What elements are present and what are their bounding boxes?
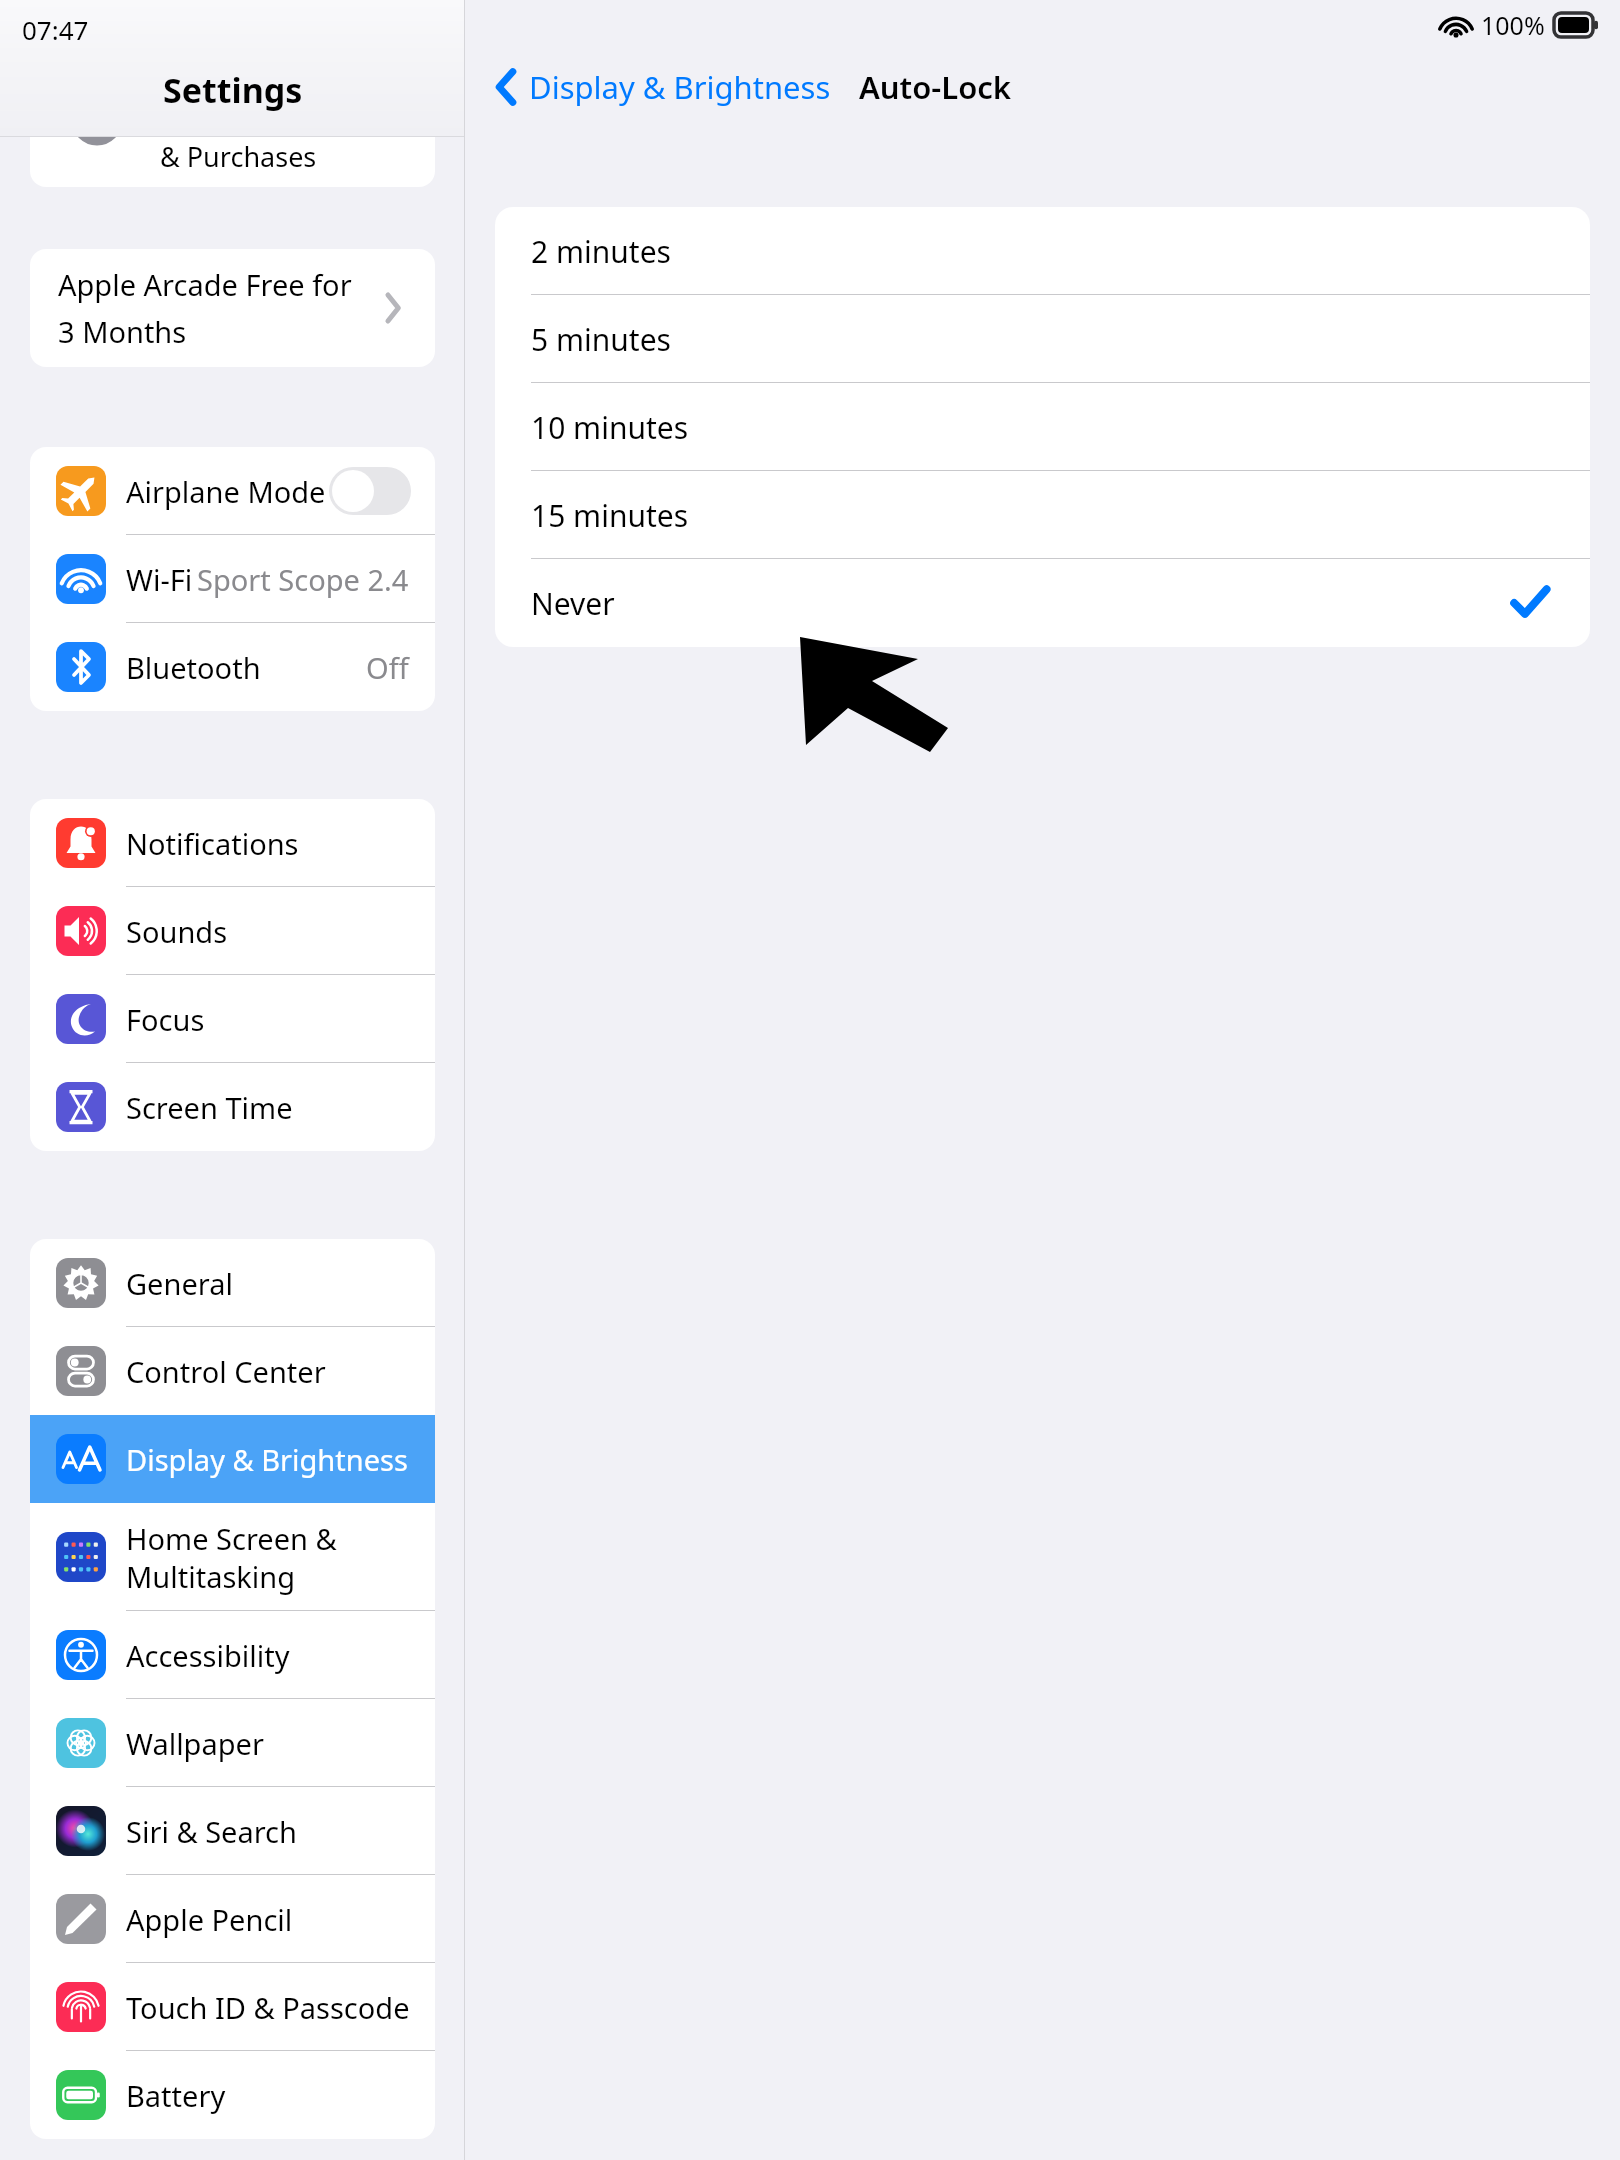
button[interactable]: Home Screen & Multitasking xyxy=(30,1503,435,1611)
staticText: Auto-Lock xyxy=(859,66,1012,108)
staticText: Control Center xyxy=(126,1352,326,1391)
staticText: Home Screen & Multitasking xyxy=(126,1519,337,1596)
staticText: Off xyxy=(366,648,409,687)
staticText: 3 Months xyxy=(58,312,187,351)
button[interactable]: Siri & Search xyxy=(30,1787,435,1875)
staticText: Focus xyxy=(126,1000,205,1039)
staticText: Bluetooth xyxy=(126,648,261,687)
button[interactable]: Control Center xyxy=(30,1327,435,1415)
button[interactable]: Apple Pencil xyxy=(30,1875,435,1963)
other: Selected xyxy=(1512,585,1548,621)
button[interactable]: Wallpaper xyxy=(30,1699,435,1787)
staticText: 07:47 xyxy=(22,12,89,47)
staticText: 15 minutes xyxy=(531,495,689,536)
staticText: Battery xyxy=(126,2076,226,2115)
staticText: Display & Brightness xyxy=(529,66,831,108)
staticText: Touch ID & Passcode xyxy=(126,1988,410,2027)
button[interactable]: Battery xyxy=(30,2051,435,2139)
staticText: Never xyxy=(531,583,615,624)
staticText: Screen Time xyxy=(126,1088,293,1127)
button[interactable]: Sounds xyxy=(30,887,435,975)
staticText: Wallpaper xyxy=(126,1724,264,1763)
staticText: Notifications xyxy=(126,824,299,863)
button[interactable]: Apple Arcade Free for xyxy=(30,249,435,367)
staticText: Siri & Search xyxy=(126,1812,297,1851)
staticText: 2 minutes xyxy=(531,231,671,272)
staticText: Sounds xyxy=(126,912,228,951)
button[interactable]: Display & Brightness xyxy=(491,58,837,116)
staticText: General xyxy=(126,1264,233,1303)
staticText: Apple Pencil xyxy=(126,1900,293,1939)
button[interactable]: Wi-Fi xyxy=(30,535,435,623)
staticText: Display & Brightness xyxy=(126,1440,408,1479)
button[interactable]: Display & Brightness xyxy=(30,1415,435,1503)
button[interactable]: Accessibility xyxy=(30,1611,435,1699)
staticText: Wi-Fi xyxy=(126,560,193,599)
button[interactable]: 5 minutes xyxy=(495,295,1590,383)
staticText: Airplane Mode xyxy=(126,472,326,511)
button[interactable]: Focus xyxy=(30,975,435,1063)
button[interactable]: Never xyxy=(495,559,1590,647)
staticText: Accessibility xyxy=(126,1636,290,1675)
button[interactable]: General xyxy=(30,1239,435,1327)
staticText: Settings xyxy=(163,67,303,113)
staticText: Sport Scope 2.4 xyxy=(197,560,409,599)
staticText: 100% xyxy=(1481,8,1545,42)
button[interactable]: Screen Time xyxy=(30,1063,435,1151)
button[interactable]: Touch ID & Passcode xyxy=(30,1963,435,2051)
button[interactable]: Notifications xyxy=(30,799,435,887)
button[interactable]: 15 minutes xyxy=(495,471,1590,559)
button[interactable]: 10 minutes xyxy=(495,383,1590,471)
button[interactable]: Airplane Mode off xyxy=(329,467,411,515)
button[interactable]: Bluetooth xyxy=(30,623,435,711)
button[interactable]: Airplane Mode xyxy=(30,447,435,535)
staticText: Apple Arcade Free for xyxy=(58,265,352,304)
staticText: & Purchases xyxy=(160,138,317,175)
staticText: 5 minutes xyxy=(531,319,671,360)
staticText: 10 minutes xyxy=(531,407,689,448)
button[interactable]: & Purchases xyxy=(30,137,435,187)
button[interactable]: 2 minutes xyxy=(495,207,1590,295)
